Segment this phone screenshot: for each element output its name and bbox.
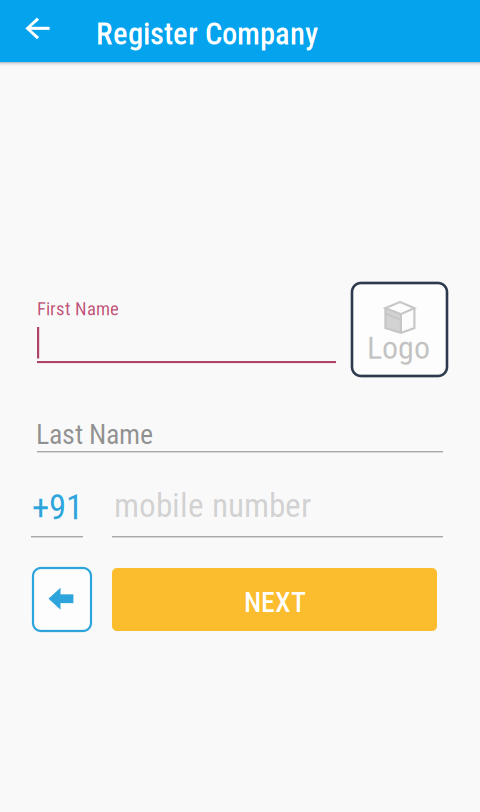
- staticText: Last Name: [36, 418, 153, 451]
- staticText: First Name: [37, 298, 119, 320]
- button[interactable]: Register Company: [0, 0, 480, 62]
- staticText: mobile number: [114, 486, 311, 525]
- staticText: Logo: [367, 329, 430, 366]
- button[interactable]: Back: [33, 568, 91, 631]
- button[interactable]: NEXT: [112, 568, 437, 631]
- staticText: NEXT: [244, 586, 306, 619]
- staticText: Register Company: [96, 16, 318, 52]
- staticText: +91: [32, 487, 83, 528]
